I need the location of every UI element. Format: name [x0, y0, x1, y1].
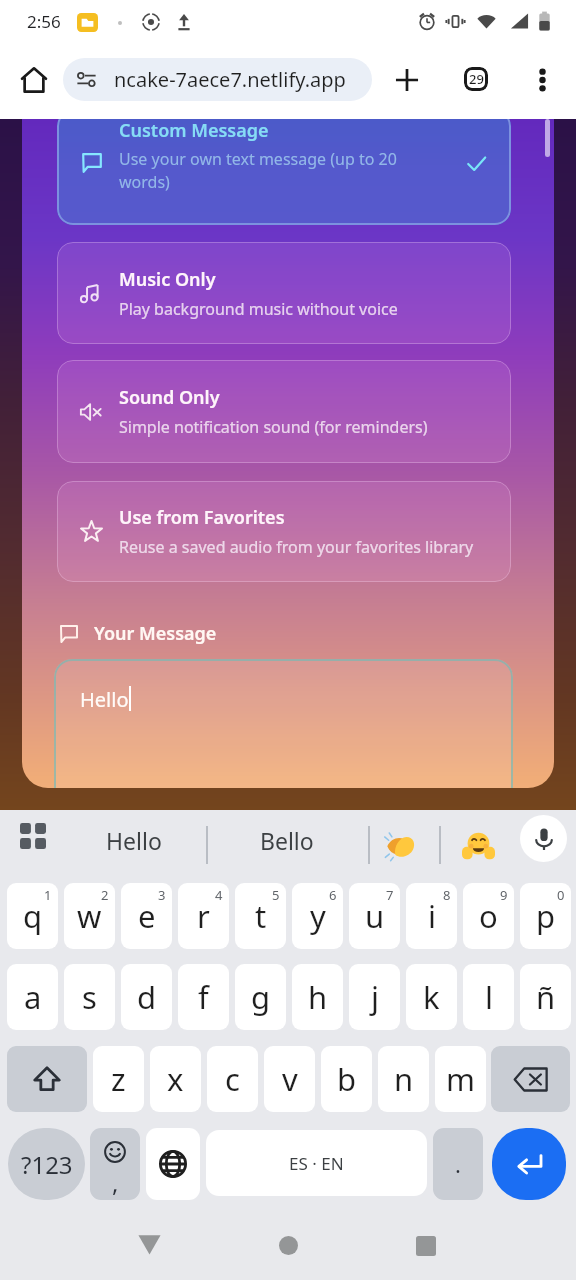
- button[interactable]: Home: [246, 1210, 330, 1280]
- button[interactable]: z: [93, 1046, 144, 1112]
- button[interactable]: u: [349, 883, 400, 949]
- staticText: Hello: [106, 825, 162, 856]
- button[interactable]: Sound Only: [57, 360, 511, 463]
- button[interactable]: j: [349, 964, 400, 1030]
- staticText: h: [308, 976, 328, 1018]
- button[interactable]: d: [121, 964, 172, 1030]
- staticText: w: [77, 895, 102, 937]
- staticText: Music Only: [119, 267, 216, 292]
- staticText: 2:56: [27, 10, 61, 33]
- staticText: n: [394, 1058, 414, 1100]
- button[interactable]: q: [7, 883, 58, 949]
- button[interactable]: Hugging face emoji: [452, 818, 504, 873]
- button[interactable]: v: [264, 1046, 315, 1112]
- staticText: 5: [272, 886, 280, 904]
- staticText: Play background music without voice: [119, 298, 398, 320]
- button[interactable]: m: [435, 1046, 486, 1112]
- staticText: ñ: [536, 976, 556, 1018]
- button[interactable]: New tab: [384, 57, 429, 102]
- staticText: ES · EN: [289, 1152, 344, 1175]
- button[interactable]: i: [406, 883, 457, 949]
- button[interactable]: Enter: [492, 1128, 566, 1200]
- button[interactable]: Emoji and comma: [90, 1128, 140, 1200]
- button[interactable]: c: [207, 1046, 258, 1112]
- button[interactable]: Custom Message: [57, 119, 511, 225]
- button[interactable]: Change keyboard language: [146, 1128, 200, 1200]
- staticText: s: [82, 976, 97, 1018]
- button[interactable]: Recent apps: [384, 1210, 468, 1280]
- button[interactable]: l: [463, 964, 514, 1030]
- staticText: m: [446, 1058, 475, 1100]
- button[interactable]: y: [292, 883, 343, 949]
- button[interactable]: g: [235, 964, 286, 1030]
- button[interactable]: Shift: [7, 1046, 87, 1112]
- button[interactable]: a: [7, 964, 58, 1030]
- button[interactable]: ES · EN: [206, 1130, 427, 1196]
- button[interactable]: t: [235, 883, 286, 949]
- button[interactable]: b: [321, 1046, 372, 1112]
- button[interactable]: Clapping hands emoji: [374, 818, 426, 873]
- button[interactable]: r: [178, 883, 229, 949]
- button[interactable]: w: [64, 883, 115, 949]
- button[interactable]: Keyboard toolbar: [13, 816, 53, 856]
- button[interactable]: More options: [520, 57, 565, 102]
- staticText: ,: [112, 1166, 119, 1199]
- button[interactable]: Hello: [62, 813, 206, 868]
- button[interactable]: s: [64, 964, 115, 1030]
- button[interactable]: Bello: [215, 813, 359, 868]
- staticText: l: [485, 976, 493, 1018]
- button[interactable]: Backspace: [491, 1046, 570, 1112]
- staticText: Use from Favorites: [119, 505, 285, 530]
- staticText: t: [255, 895, 267, 937]
- staticText: 9: [500, 886, 508, 904]
- staticText: Custom Message: [119, 119, 269, 143]
- button[interactable]: h: [292, 964, 343, 1030]
- staticText: ncake-7aece7.netlify.app: [114, 66, 346, 93]
- button[interactable]: Back: [107, 1210, 191, 1280]
- staticText: 1: [44, 886, 52, 904]
- button[interactable]: x: [150, 1046, 201, 1112]
- staticText: g: [251, 976, 271, 1018]
- button[interactable]: ncake-7aece7.netlify.app: [63, 58, 372, 101]
- button[interactable]: k: [406, 964, 457, 1030]
- staticText: Use your own text message (up to 20 word…: [119, 148, 449, 193]
- staticText: Bello: [260, 825, 314, 856]
- staticText: f: [198, 976, 209, 1018]
- staticText: a: [24, 976, 42, 1018]
- staticText: v: [282, 1058, 298, 1100]
- button[interactable]: n: [378, 1046, 429, 1112]
- staticText: x: [167, 1058, 184, 1100]
- staticText: u: [365, 895, 385, 937]
- staticText: d: [137, 976, 157, 1018]
- button[interactable]: Hello: [54, 659, 513, 788]
- staticText: Simple notification sound (for reminders…: [119, 416, 428, 438]
- staticText: i: [428, 895, 436, 937]
- button[interactable]: e: [121, 883, 172, 949]
- button[interactable]: ?123: [8, 1128, 85, 1200]
- staticText: 2: [101, 886, 109, 904]
- button[interactable]: o: [463, 883, 514, 949]
- staticText: c: [225, 1058, 240, 1100]
- button[interactable]: Use from Favorites: [57, 481, 511, 582]
- button[interactable]: ñ: [520, 964, 571, 1030]
- button[interactable]: .: [433, 1128, 483, 1200]
- button[interactable]: Switch tabs, 29 open: [453, 56, 498, 101]
- button[interactable]: p: [520, 883, 571, 949]
- button[interactable]: Music Only: [57, 242, 511, 344]
- button[interactable]: Voice input: [520, 815, 567, 862]
- staticText: j: [371, 976, 379, 1018]
- staticText: Your Message: [94, 621, 217, 646]
- staticText: o: [479, 895, 498, 937]
- staticText: 8: [443, 886, 451, 904]
- button[interactable]: Home: [11, 57, 56, 102]
- button[interactable]: Your Message: [59, 621, 217, 646]
- staticText: Hello: [80, 686, 129, 713]
- staticText: 7: [386, 886, 394, 904]
- staticText: y: [310, 895, 326, 937]
- staticText: e: [138, 895, 156, 937]
- staticText: 29: [469, 70, 484, 88]
- staticText: Sound Only: [119, 385, 220, 410]
- button[interactable]: f: [178, 964, 229, 1030]
- staticText: 4: [215, 886, 223, 904]
- staticText: b: [337, 1058, 357, 1100]
